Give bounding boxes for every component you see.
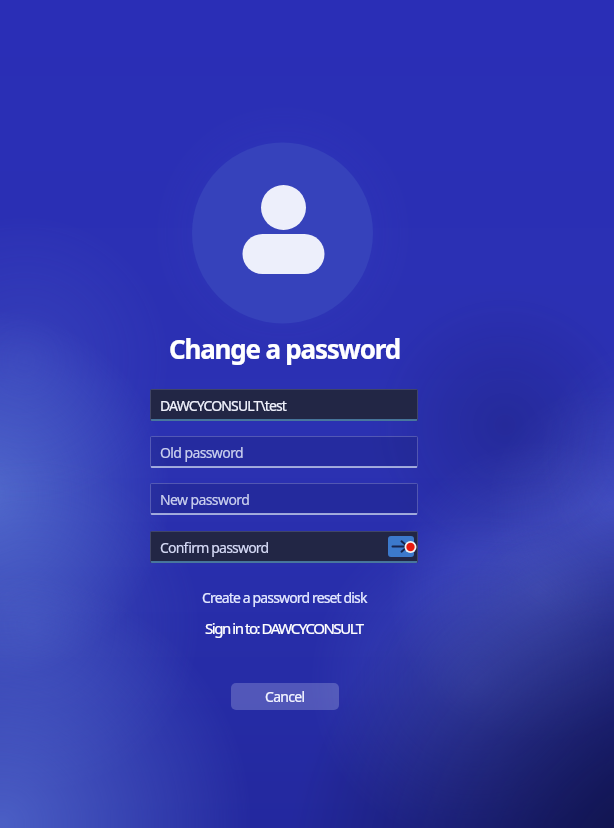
button[interactable]: Create a password reset disk bbox=[84, 587, 484, 607]
button[interactable]: Cancel bbox=[231, 683, 339, 710]
staticText: Confirm password bbox=[160, 538, 269, 557]
staticText: Sign in to: DAWCYCONSULT bbox=[205, 618, 363, 638]
staticText: DAWCYCONSULT\test bbox=[160, 396, 287, 415]
button[interactable] bbox=[388, 536, 414, 557]
staticText: New password bbox=[160, 490, 250, 509]
staticText: Old password bbox=[160, 443, 244, 462]
staticText: Change a password bbox=[169, 331, 400, 365]
button[interactable]: New password bbox=[150, 483, 418, 515]
staticText: Cancel bbox=[265, 687, 305, 706]
button[interactable]: DAWCYCONSULT\test bbox=[150, 389, 418, 421]
button[interactable]: Old password bbox=[150, 436, 418, 468]
staticText: Create a password reset disk bbox=[202, 588, 367, 607]
button[interactable]: Confirm password bbox=[150, 531, 418, 563]
